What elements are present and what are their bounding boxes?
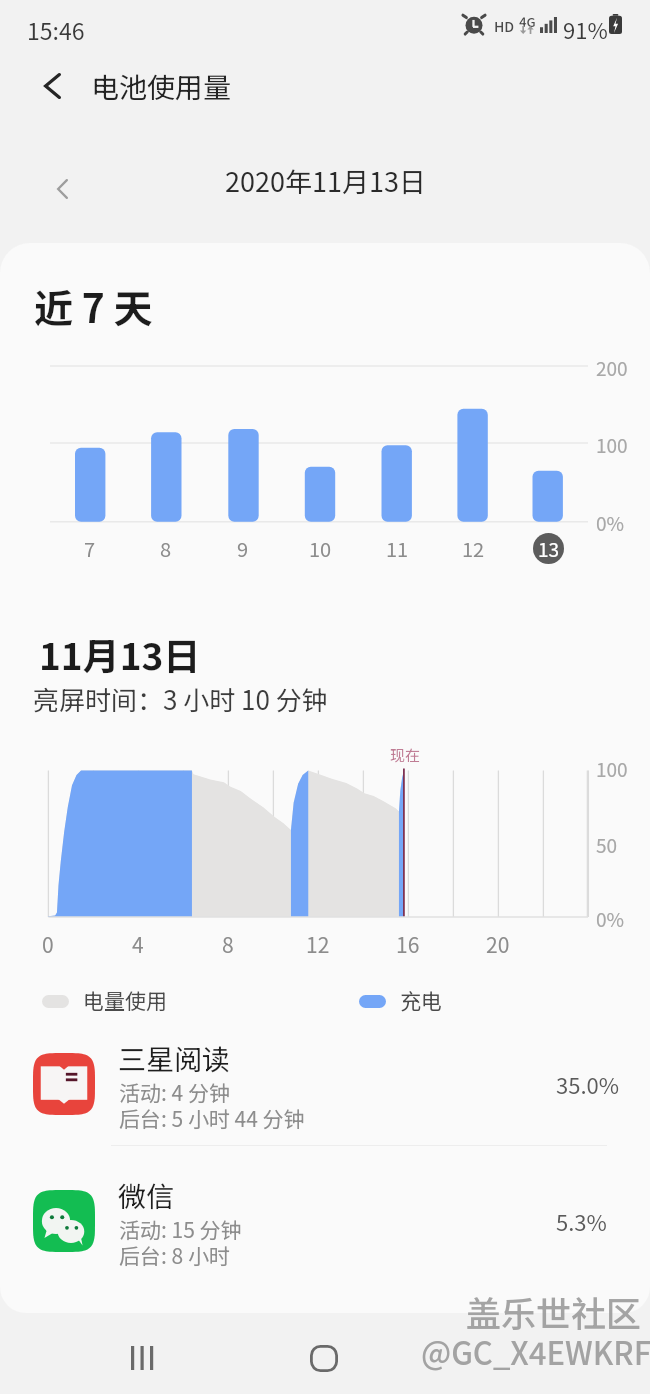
staticText: 5.3% bbox=[556, 1205, 607, 1237]
staticText: 7 bbox=[84, 534, 96, 563]
button[interactable]: Back bbox=[480, 1322, 544, 1394]
staticText: 现在 bbox=[390, 744, 421, 766]
staticText: 15:46 bbox=[27, 13, 85, 46]
staticText: 4G bbox=[519, 12, 536, 31]
staticText: 后台: 8 小时 bbox=[119, 1240, 230, 1270]
button[interactable]: Back bbox=[22, 56, 82, 116]
staticText: 20 bbox=[486, 929, 510, 957]
staticText: 亮屏时间：3 小时 10 分钟 bbox=[33, 680, 328, 718]
staticText: 35.0% bbox=[556, 1068, 620, 1100]
staticText: 91% bbox=[563, 13, 608, 45]
staticText: 后台: 5 小时 44 分钟 bbox=[119, 1103, 305, 1133]
staticText: 12 bbox=[462, 534, 485, 563]
staticText: 11月13日 bbox=[39, 627, 201, 681]
staticText: 13 bbox=[538, 535, 560, 563]
staticText: 100 bbox=[596, 755, 628, 783]
staticText: 200 bbox=[596, 354, 628, 382]
staticText: 盖乐世社区 bbox=[466, 1286, 642, 1337]
staticText: 电量使用 bbox=[83, 985, 167, 1015]
staticText: 电池使用量 bbox=[91, 66, 232, 107]
staticText: 100 bbox=[596, 431, 628, 459]
staticText: 11 bbox=[386, 534, 409, 563]
button[interactable]: 微信 bbox=[0, 1172, 650, 1300]
staticText: 0% bbox=[596, 509, 625, 537]
staticText: 活动: 15 分钟 bbox=[119, 1214, 242, 1244]
button[interactable]: Previous day bbox=[34, 161, 90, 217]
staticText: 充电 bbox=[400, 985, 442, 1015]
staticText: 50 bbox=[596, 831, 618, 859]
staticText: 12 bbox=[306, 929, 330, 957]
staticText: 8 bbox=[160, 534, 172, 563]
staticText: 0 bbox=[42, 929, 54, 957]
button[interactable]: Recent apps bbox=[110, 1322, 174, 1394]
staticText: 9 bbox=[237, 534, 249, 563]
staticText: 2020年11月13日 bbox=[225, 161, 426, 200]
staticText: 4 bbox=[132, 929, 144, 957]
staticText: @GC_X4EWKRF bbox=[421, 1329, 650, 1374]
staticText: 0% bbox=[596, 905, 625, 933]
button[interactable]: 三星阅读 bbox=[0, 1035, 650, 1163]
staticText: 8 bbox=[222, 929, 234, 957]
staticText: 16 bbox=[396, 929, 420, 957]
staticText: 10 bbox=[309, 534, 332, 563]
button[interactable]: Home bbox=[292, 1322, 356, 1394]
staticText: 三星阅读 bbox=[118, 1038, 231, 1079]
staticText: 活动: 4 分钟 bbox=[119, 1077, 230, 1107]
staticText: HD bbox=[494, 16, 515, 36]
staticText: 微信 bbox=[118, 1175, 175, 1216]
staticText: 近 7 天 bbox=[34, 278, 153, 334]
